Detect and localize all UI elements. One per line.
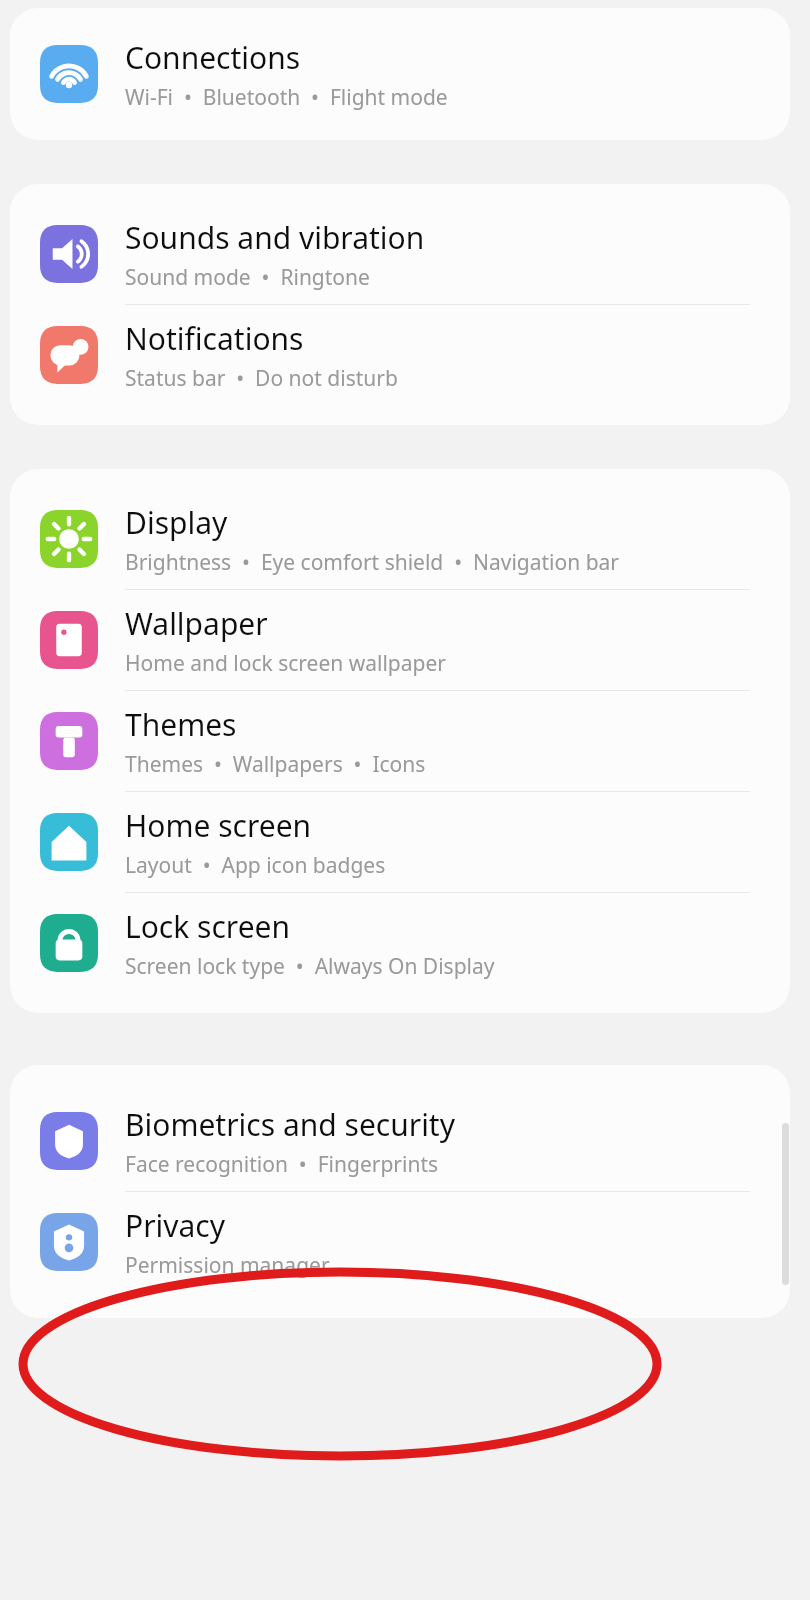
staticText: Status bar • Do not disturb xyxy=(125,364,398,393)
button[interactable]: Lock screen xyxy=(10,893,790,993)
button[interactable]: Wallpaper xyxy=(10,590,790,690)
staticText: Display xyxy=(125,502,228,543)
button[interactable]: Biometrics and security xyxy=(10,1091,790,1191)
staticText: Sound mode • Ringtone xyxy=(125,263,370,292)
staticText: Privacy xyxy=(125,1205,226,1246)
staticText: Permission manager xyxy=(125,1251,330,1280)
staticText: Sounds and vibration xyxy=(125,217,425,258)
staticText: Screen lock type • Always On Display xyxy=(125,952,495,981)
staticText: Themes xyxy=(125,704,237,745)
button[interactable]: Sounds and vibration xyxy=(10,204,790,304)
button[interactable]: Connections xyxy=(10,24,790,124)
staticText: Connections xyxy=(125,37,301,78)
staticText: Home and lock screen wallpaper xyxy=(125,649,446,678)
button[interactable]: Themes xyxy=(10,691,790,791)
staticText: Lock screen xyxy=(125,906,291,947)
button[interactable]: Display xyxy=(10,489,790,589)
staticText: Home screen xyxy=(125,805,312,846)
button[interactable]: Notifications xyxy=(10,305,790,405)
staticText: Layout • App icon badges xyxy=(125,851,386,880)
staticText: Notifications xyxy=(125,318,304,359)
staticText: Themes • Wallpapers • Icons xyxy=(125,750,426,779)
button[interactable]: Privacy xyxy=(10,1192,790,1292)
staticText: Face recognition • Fingerprints xyxy=(125,1150,439,1179)
staticText: Wallpaper xyxy=(125,603,268,644)
staticText: Wi-Fi • Bluetooth • Flight mode xyxy=(125,83,448,112)
staticText: Brightness • Eye comfort shield • Naviga… xyxy=(125,548,620,577)
button[interactable]: Home screen xyxy=(10,792,790,892)
staticText: Biometrics and security xyxy=(125,1104,455,1145)
